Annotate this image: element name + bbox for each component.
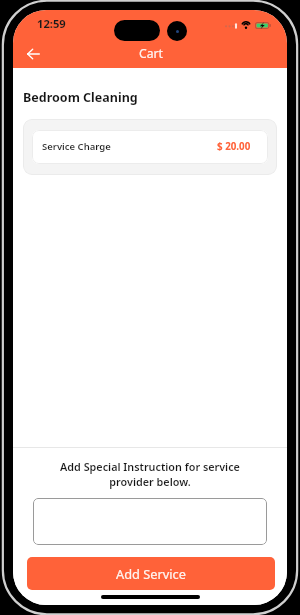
staticText: Cart [139,45,163,62]
staticText: Add Service [116,565,186,582]
staticText: $ 20.00 [217,140,251,153]
button[interactable]: Service Charge [32,130,268,164]
staticText: Bedroom Cleaning [23,89,138,106]
staticText: Add Special Instruction for service prov… [53,459,247,489]
button[interactable] [33,498,267,545]
button[interactable]: Add Service [27,557,275,590]
button[interactable]: Back [22,43,44,65]
staticText: 12:59 [37,16,66,31]
staticText: Service Charge [42,140,111,153]
